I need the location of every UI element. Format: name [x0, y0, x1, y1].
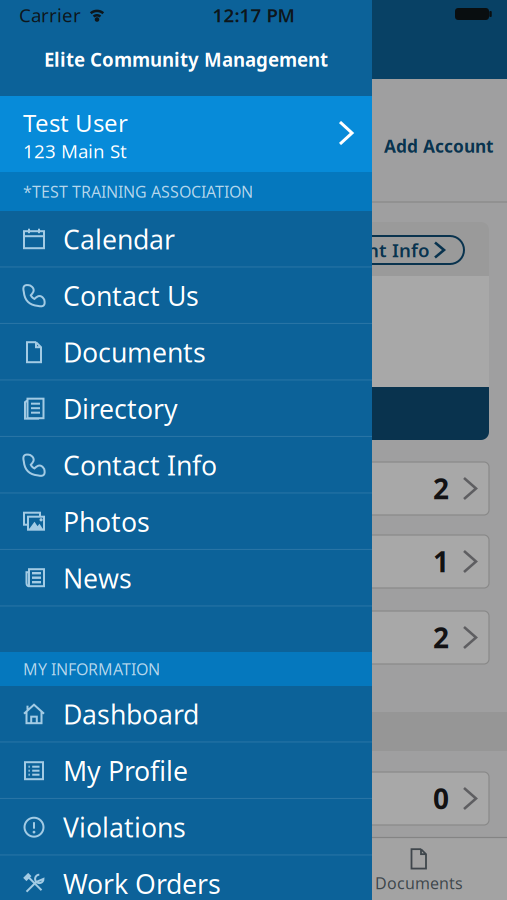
- staticText: 0: [433, 780, 449, 817]
- button[interactable]: My Profile: [0, 742, 372, 799]
- staticText: Account Info: [312, 238, 430, 262]
- button[interactable]: 0: [18, 772, 489, 825]
- button[interactable]: News: [0, 550, 372, 606]
- button[interactable]: Contact Us: [0, 267, 372, 324]
- button[interactable]: Work Orders: [0, 855, 372, 900]
- staticText: *TEST TRAINING ASSOCIATION: [23, 181, 253, 202]
- button[interactable]: Violations: [0, 799, 372, 855]
- staticText: Documents: [63, 334, 206, 370]
- staticText: Documents: [375, 872, 463, 894]
- staticText: 123 Main St: [23, 138, 127, 163]
- staticText: 1: [433, 543, 449, 580]
- button[interactable]: Test User: [0, 96, 372, 172]
- button[interactable]: Calendar: [0, 211, 372, 267]
- button[interactable]: 1: [18, 535, 489, 588]
- staticText: Work Orders: [63, 866, 221, 900]
- staticText: Violations: [63, 809, 186, 845]
- staticText: 12:17 PM: [212, 3, 294, 27]
- button[interactable]: 2: [18, 462, 489, 515]
- staticText: Calendar: [63, 221, 175, 257]
- staticText: Elite Community Management: [44, 47, 328, 72]
- staticText: Contact Us: [63, 278, 199, 313]
- staticText: My Profile: [63, 753, 188, 788]
- staticText: News: [63, 560, 132, 596]
- staticText: Directory: [63, 391, 178, 426]
- staticText: 2: [433, 619, 449, 656]
- staticText: Carrier: [19, 3, 81, 27]
- staticText: Test User: [23, 107, 128, 139]
- button[interactable]: Documents: [359, 845, 479, 897]
- button[interactable]: Account Info: [296, 236, 464, 264]
- button[interactable]: Directory: [0, 380, 372, 437]
- staticText: Photos: [63, 504, 150, 539]
- button[interactable]: Add Account: [384, 134, 494, 157]
- staticText: 2: [433, 470, 449, 507]
- button[interactable]: 2: [18, 611, 489, 664]
- button[interactable]: Contact Info: [0, 437, 372, 493]
- button[interactable]: Documents: [0, 324, 372, 380]
- staticText: Contact Info: [63, 447, 217, 483]
- button[interactable]: Dashboard: [0, 686, 372, 742]
- staticText: MY INFORMATION: [23, 658, 160, 680]
- button[interactable]: Photos: [0, 493, 372, 550]
- staticText: Add Account: [384, 134, 494, 157]
- staticText: Dashboard: [63, 696, 199, 732]
